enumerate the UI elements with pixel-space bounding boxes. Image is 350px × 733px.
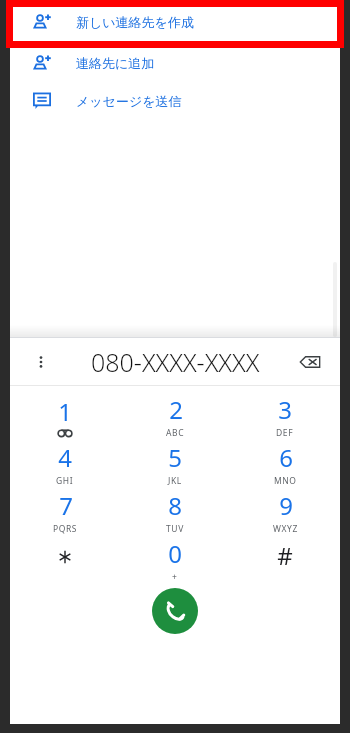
button[interactable]: 1	[10, 392, 120, 440]
button[interactable]: 7	[10, 488, 120, 536]
staticText: 6	[279, 441, 293, 474]
staticText: GHI	[56, 475, 74, 487]
staticText: 0	[168, 537, 182, 570]
staticText: JKL	[168, 475, 182, 487]
staticText: PQRS	[53, 523, 78, 535]
staticText: 080-XXXX-XXXX	[91, 345, 260, 379]
staticText: WXYZ	[273, 523, 298, 535]
button[interactable]: #	[230, 536, 340, 584]
button[interactable]: 新しい連絡先を作成	[10, 0, 340, 44]
button[interactable]: 4	[10, 440, 120, 488]
staticText: ABC	[166, 427, 185, 439]
button[interactable]: 8	[120, 488, 230, 536]
button[interactable]	[10, 536, 120, 584]
button[interactable]: 6	[230, 440, 340, 488]
button[interactable]: 連絡先に追加	[10, 44, 340, 82]
staticText: 連絡先に追加	[76, 55, 155, 71]
staticText: MNO	[274, 475, 297, 487]
staticText: 9	[279, 489, 293, 522]
staticText: 5	[168, 441, 182, 474]
button[interactable]: Backspace	[294, 346, 326, 378]
staticText: 1	[58, 395, 72, 428]
button[interactable]: 5	[120, 440, 230, 488]
button[interactable]: 0	[120, 536, 230, 584]
staticText: 3	[278, 393, 292, 426]
button[interactable]: More options	[28, 349, 54, 375]
staticText: 新しい連絡先を作成	[76, 14, 194, 30]
staticText: DEF	[276, 427, 294, 439]
staticText: TUV	[166, 523, 184, 535]
button[interactable]: 3	[230, 392, 340, 440]
staticText: +	[172, 571, 178, 583]
staticText: 4	[58, 441, 72, 474]
staticText: 7	[59, 489, 73, 522]
staticText: メッセージを送信	[76, 93, 182, 109]
button[interactable]: Call	[152, 588, 198, 634]
button[interactable]: メッセージを送信	[10, 82, 340, 120]
staticText: 2	[169, 393, 183, 426]
staticText: 8	[168, 489, 182, 522]
button[interactable]: 2	[120, 392, 230, 440]
button[interactable]: 9	[230, 488, 340, 536]
staticText: #	[277, 539, 293, 572]
